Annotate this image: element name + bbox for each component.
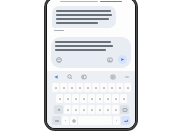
button[interactable]: Gallery	[106, 56, 114, 64]
button[interactable]	[112, 105, 119, 114]
button[interactable]	[96, 105, 103, 114]
button[interactable]	[72, 105, 79, 114]
button[interactable]	[120, 94, 127, 103]
button[interactable]	[100, 1, 122, 2]
button[interactable]: Emoji	[55, 56, 63, 64]
button[interactable]	[92, 83, 99, 92]
button[interactable]	[96, 94, 103, 103]
button[interactable]	[124, 83, 131, 92]
button[interactable]: Period	[113, 116, 120, 125]
button[interactable]	[72, 94, 79, 103]
button[interactable]: Enter	[121, 116, 130, 125]
button[interactable]	[116, 83, 123, 92]
button[interactable]	[76, 83, 83, 92]
button[interactable]	[104, 105, 111, 114]
button[interactable]	[80, 94, 87, 103]
button[interactable]	[52, 6, 116, 28]
button[interactable]: Keyboard tool 3	[79, 72, 88, 81]
button[interactable]	[52, 83, 59, 92]
button[interactable]: Send	[118, 55, 127, 64]
button[interactable]: Emoji	[51, 37, 131, 68]
button[interactable]	[88, 94, 95, 103]
button[interactable]: Symbols	[52, 116, 61, 125]
button[interactable]	[80, 105, 87, 114]
button[interactable]: Keyboard tool 6	[122, 72, 131, 81]
button[interactable]	[104, 94, 111, 103]
button[interactable]	[64, 94, 71, 103]
button[interactable]: Emoji keyboard	[70, 116, 77, 125]
button[interactable]	[60, 83, 67, 92]
button[interactable]: Keyboard tool 5	[108, 72, 117, 81]
button[interactable]: Keyboard tool 1	[51, 72, 60, 81]
button[interactable]	[68, 83, 75, 92]
button[interactable]	[56, 94, 63, 103]
button[interactable]	[100, 83, 107, 92]
button[interactable]	[108, 83, 115, 92]
button[interactable]	[64, 105, 71, 114]
button[interactable]	[112, 94, 119, 103]
button[interactable]: Shift	[54, 105, 63, 114]
button[interactable]: Keyboard tool 2	[65, 72, 74, 81]
button[interactable]: Backspace	[120, 105, 129, 114]
button[interactable]	[84, 83, 91, 92]
button[interactable]: Comma	[62, 116, 69, 125]
button[interactable]	[88, 105, 95, 114]
